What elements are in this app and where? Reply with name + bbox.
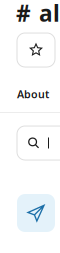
button[interactable]: Favourite (17, 33, 55, 67)
staticText: all-hands (39, 0, 60, 28)
staticText: # (16, 0, 31, 28)
button[interactable]: Send (17, 194, 55, 232)
staticText: About (17, 87, 49, 101)
